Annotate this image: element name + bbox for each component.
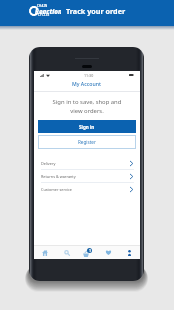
button[interactable]: Returns & warranty — [34, 170, 140, 183]
staticText: 1 — [89, 248, 91, 253]
button[interactable]: Customer service — [34, 183, 140, 195]
button[interactable]: Delivery — [34, 157, 140, 170]
button[interactable]: Search — [56, 246, 77, 259]
button[interactable]: Register — [38, 135, 136, 149]
staticText: Sign in to save, shop and view orders. — [34, 98, 140, 114]
staticText: Register — [78, 139, 96, 145]
staticText: CHAIN — [37, 4, 48, 8]
staticText: 11:30 — [84, 73, 94, 78]
staticText: Returns & warranty — [41, 174, 76, 179]
button[interactable]: Wishlist — [98, 246, 119, 259]
staticText: My Account — [72, 80, 102, 87]
button[interactable]: Sign in — [38, 120, 136, 133]
button[interactable]: Home — [34, 246, 56, 259]
button[interactable]: Cart, 1 item — [77, 246, 98, 259]
staticText: Sign in — [79, 124, 95, 130]
button[interactable]: Account — [119, 246, 140, 259]
staticText: Reaction — [35, 7, 61, 15]
staticText: CYCLES — [38, 13, 50, 17]
staticText: Customer service — [41, 187, 72, 192]
staticText: Delivery — [41, 161, 56, 166]
staticText: Track your order — [66, 6, 126, 16]
